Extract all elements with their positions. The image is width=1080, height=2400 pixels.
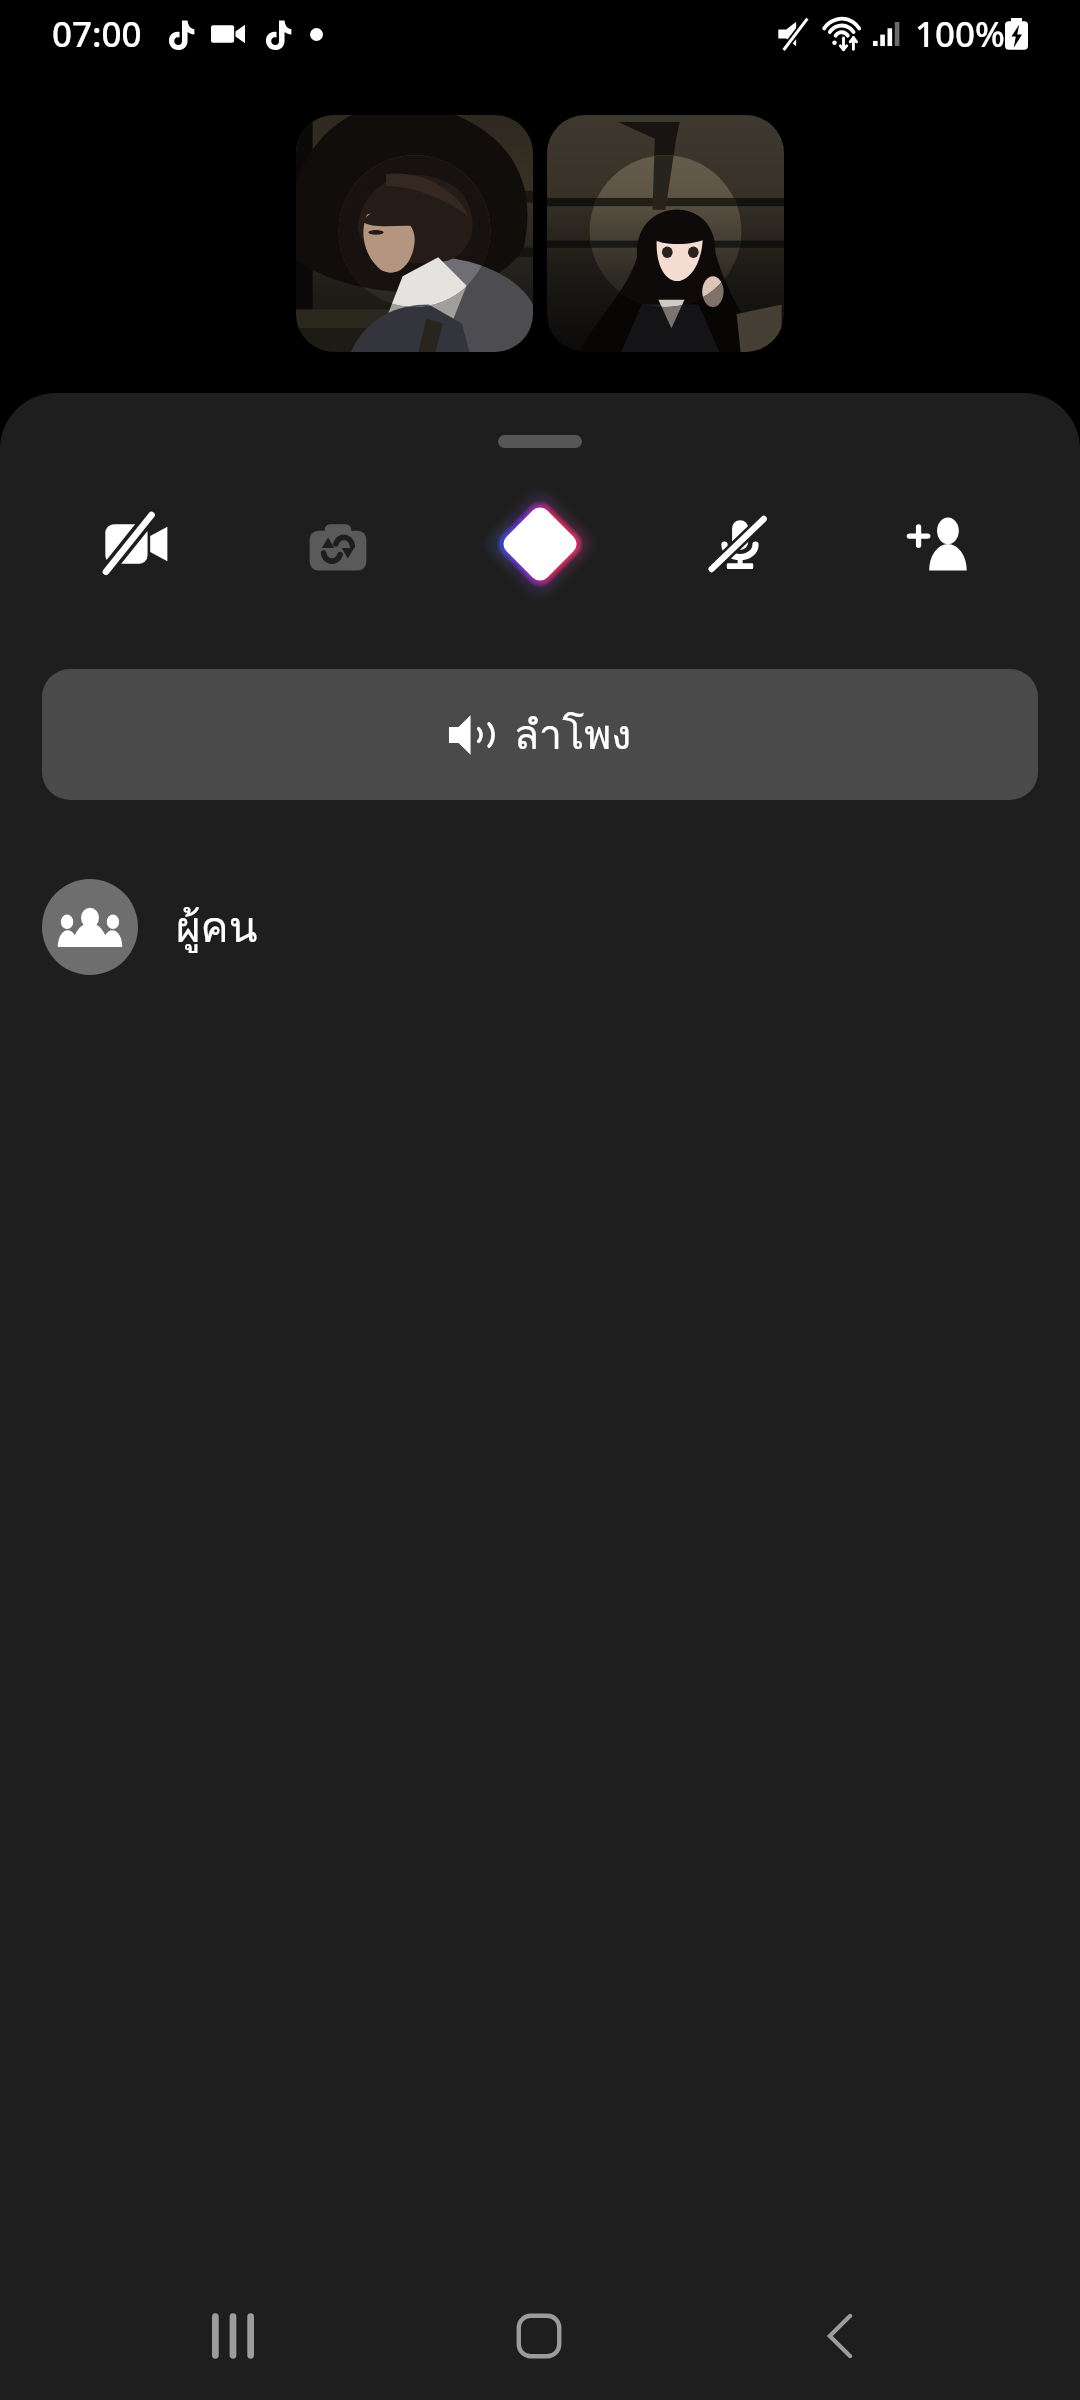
button[interactable]: Turn video off <box>77 484 197 604</box>
button[interactable]: Home <box>479 2276 599 2396</box>
button[interactable]: Unmute microphone <box>680 484 800 604</box>
staticText: 07:00 <box>52 10 142 58</box>
button[interactable]: ผู้คน <box>0 879 1080 975</box>
staticText: ผู้คน <box>176 894 258 961</box>
button[interactable]: Add people <box>881 484 1001 604</box>
button[interactable]: Meta AI <box>470 484 610 604</box>
button[interactable]: Switch camera <box>278 484 398 604</box>
button[interactable]: Recents <box>173 2276 293 2396</box>
button[interactable]: Your video <box>547 115 784 352</box>
button[interactable]: ลำโพง <box>42 669 1038 800</box>
button[interactable]: Back <box>780 2276 900 2396</box>
staticText: ลำโพง <box>514 702 632 767</box>
button[interactable]: Participant video <box>296 115 533 352</box>
staticText: 100% <box>915 10 1005 58</box>
